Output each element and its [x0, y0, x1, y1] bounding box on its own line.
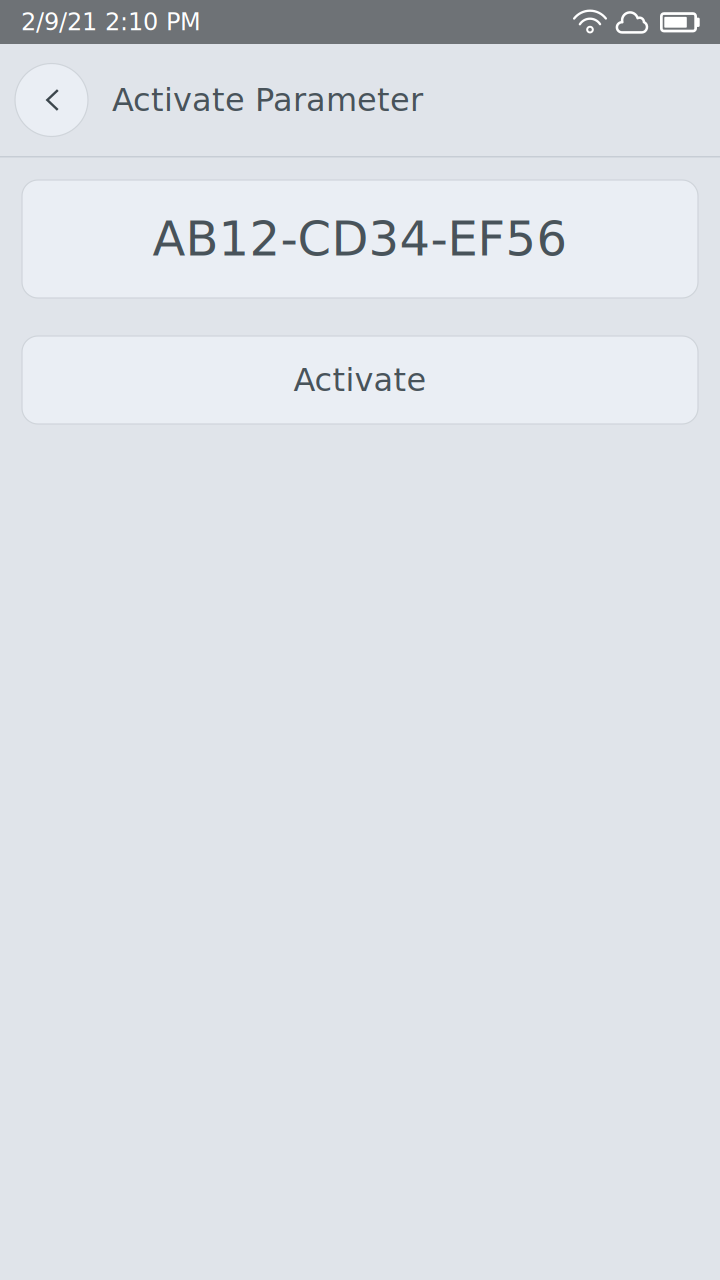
staticText: 2/9/21 2:10 PM [21, 8, 201, 36]
staticText: Activate [293, 361, 426, 399]
staticText: AB12-CD34-EF56 [152, 211, 567, 267]
button[interactable]: Back [15, 63, 88, 136]
staticText: Activate Parameter [112, 81, 423, 119]
button[interactable]: Activate [22, 336, 698, 424]
